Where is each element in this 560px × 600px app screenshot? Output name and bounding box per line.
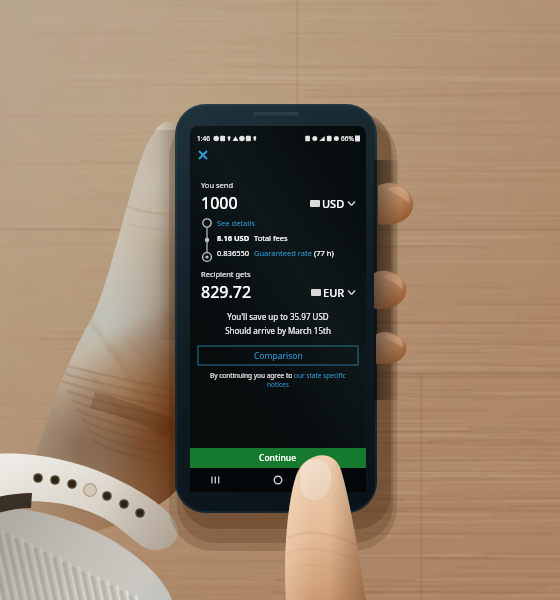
staticText: You send (201, 180, 234, 190)
staticText: 0.836550 (217, 248, 250, 258)
staticText: Recipient gets (201, 269, 251, 279)
button[interactable]: USD (310, 196, 355, 211)
staticText: 829.72 (201, 281, 252, 303)
button[interactable]: Comparison (198, 346, 358, 365)
staticText: (77 h) (314, 248, 334, 258)
staticText: You'll save up to 35.97 USD (190, 311, 366, 322)
staticText: 1000 (201, 192, 238, 214)
staticText: Guaranteed rate (254, 248, 312, 258)
staticText: Should arrive by March 15th (190, 325, 366, 336)
staticText: USD (322, 196, 345, 211)
staticText: Continue (259, 452, 297, 464)
staticText: 8.16 USD (217, 233, 250, 243)
staticText: By continuing you agree to (210, 371, 294, 380)
staticText: EUR (323, 285, 345, 300)
button[interactable]: EUR (311, 285, 355, 300)
staticText: 66% (341, 134, 354, 143)
staticText: Total fees (254, 233, 288, 243)
staticText: notices (267, 380, 289, 389)
button[interactable]: Continue (190, 448, 366, 468)
staticText: Comparison (254, 350, 303, 362)
button[interactable]: Recents (208, 473, 222, 487)
button[interactable]: By continuing you agree to (208, 371, 348, 389)
button[interactable]: Close (197, 149, 209, 161)
staticText: our state specific (294, 371, 346, 380)
button[interactable]: See details (217, 218, 255, 228)
staticText: See details (217, 218, 255, 228)
button[interactable]: Home (271, 473, 285, 487)
staticText: 1:46 (197, 134, 210, 143)
